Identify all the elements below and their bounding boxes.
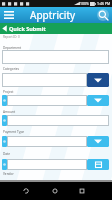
button[interactable]: Clear Payment Type [2,136,7,147]
button[interactable] [7,136,87,147]
staticText: Date [3,152,11,156]
button[interactable] [2,50,109,64]
button[interactable]: Back [0,23,9,34]
button[interactable]: Search [94,7,112,23]
button[interactable]: Clear Amount [2,115,7,126]
button[interactable] [7,115,109,126]
staticText: Amount [3,110,16,114]
button[interactable]: Open Categories list [87,73,109,87]
button[interactable] [7,95,87,106]
staticText: Payment Type [3,130,25,134]
button[interactable] [7,159,87,170]
button[interactable]: Home [46,182,64,200]
button[interactable] [2,73,87,87]
staticText: Quick Submit [9,25,46,32]
staticText: Vendor [3,172,14,176]
button[interactable]: Clear Date [2,159,7,170]
button[interactable]: Open Project list [87,95,109,106]
button[interactable]: Menu [0,7,17,23]
button[interactable]: Open Payment Type list [87,136,109,147]
staticText: 1:46 PM [97,1,111,6]
staticText: 100% [80,1,89,6]
staticText: Apptricity [30,8,76,22]
staticText: Project [3,90,14,94]
staticText: Categories [3,67,20,71]
button[interactable]: Pick date [87,159,109,170]
staticText: Department [3,46,22,50]
button[interactable]: Back [17,182,35,200]
button[interactable]: Clear Project [2,95,7,106]
staticText: Report ID: 0 [3,35,20,39]
button[interactable]: Recent apps [73,182,91,200]
